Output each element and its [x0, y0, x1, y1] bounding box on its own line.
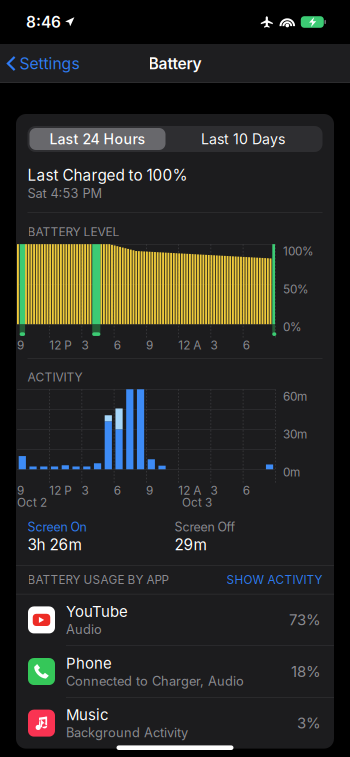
- staticText: ACTIVITY: [27, 370, 82, 384]
- staticText: 100%: [283, 244, 314, 258]
- staticText: Screen On: [27, 519, 86, 534]
- staticText: Sat 4:53 PM: [27, 186, 102, 201]
- staticText: 6: [114, 483, 121, 497]
- staticText: Music: [66, 706, 109, 724]
- button[interactable]: YouTube: [16, 594, 334, 646]
- staticText: 50%: [283, 282, 309, 296]
- staticText: 12 A: [178, 338, 201, 352]
- staticText: Connected to Charger, Audio: [66, 673, 244, 689]
- staticText: Last 10 Days: [201, 130, 285, 147]
- staticText: 60m: [283, 389, 307, 403]
- staticText: 3: [210, 338, 217, 352]
- staticText: 3%: [297, 714, 321, 732]
- staticText: Last 24 Hours: [49, 130, 145, 147]
- staticText: 6: [114, 338, 121, 352]
- staticText: 9: [17, 338, 24, 352]
- staticText: 9: [146, 338, 153, 352]
- button[interactable]: Settings: [0, 47, 89, 80]
- staticText: Oct 2: [17, 495, 47, 509]
- staticText: 73%: [289, 611, 321, 629]
- staticText: Battery: [148, 54, 201, 73]
- staticText: BATTERY LEVEL: [27, 225, 119, 239]
- staticText: 30m: [283, 427, 307, 441]
- staticText: Settings: [19, 54, 79, 73]
- staticText: 3: [81, 338, 88, 352]
- staticText: 6: [243, 338, 250, 352]
- staticText: 0%: [283, 320, 302, 334]
- staticText: Last Charged to 100%: [27, 166, 187, 185]
- staticText: 12 P: [49, 338, 71, 352]
- staticText: BATTERY USAGE BY APP: [27, 573, 168, 587]
- staticText: 8:46: [26, 13, 61, 31]
- staticText: 12 P: [49, 483, 71, 497]
- staticText: 9: [146, 483, 153, 497]
- staticText: 3: [210, 483, 217, 497]
- staticText: 9: [17, 483, 24, 497]
- staticText: Screen Off: [174, 519, 235, 534]
- button[interactable]: SHOW ACTIVITY: [226, 573, 322, 587]
- staticText: 3h 26m: [27, 535, 81, 554]
- staticText: Oct 3: [182, 495, 212, 509]
- staticText: 29m: [174, 535, 206, 554]
- staticText: YouTube: [66, 603, 128, 621]
- staticText: Audio: [66, 622, 102, 637]
- button[interactable]: Phone: [16, 646, 334, 698]
- staticText: 0m: [283, 465, 300, 479]
- button[interactable]: Last 10 Days: [165, 128, 320, 150]
- button[interactable]: Music: [16, 698, 334, 749]
- staticText: Background Activity: [66, 725, 188, 740]
- staticText: 12 A: [178, 483, 201, 497]
- button[interactable]: Last 24 Hours: [29, 128, 165, 150]
- staticText: 6: [243, 483, 250, 497]
- staticText: Phone: [66, 654, 112, 672]
- staticText: SHOW ACTIVITY: [226, 573, 322, 587]
- staticText: 18%: [291, 662, 321, 681]
- staticText: 3: [81, 483, 88, 497]
